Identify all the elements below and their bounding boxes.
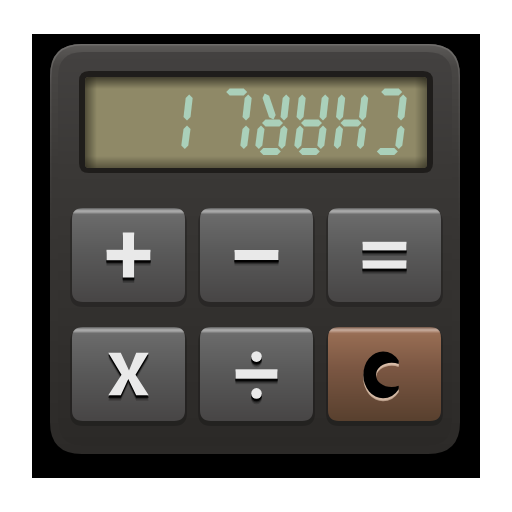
button[interactable]: Divide <box>200 327 313 421</box>
button[interactable]: Minus <box>200 208 313 302</box>
button[interactable]: Clear <box>328 327 441 421</box>
button[interactable]: Equals <box>328 208 441 302</box>
button[interactable]: Plus <box>72 208 185 302</box>
button[interactable]: Multiply <box>72 327 185 421</box>
button[interactable]: Display <box>79 71 433 173</box>
